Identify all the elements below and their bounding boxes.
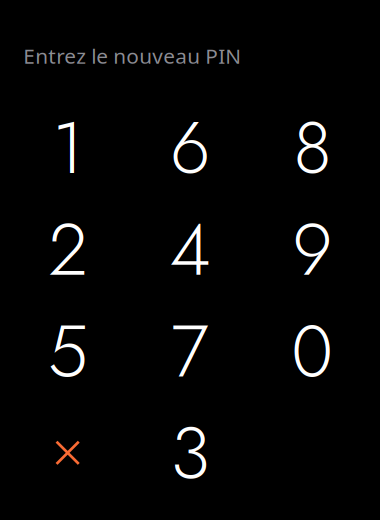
staticText: 2	[48, 198, 87, 302]
staticText: 0	[291, 299, 333, 403]
button[interactable]: 8	[251, 97, 373, 199]
staticText: 3	[170, 401, 209, 505]
staticText: 7	[171, 299, 209, 403]
button[interactable]: 2	[6, 199, 129, 301]
staticText: 9	[292, 198, 332, 302]
button[interactable]: 7	[129, 301, 251, 402]
button[interactable]: 4	[129, 199, 251, 301]
button[interactable]: 9	[251, 199, 373, 301]
button[interactable]: 6	[129, 97, 251, 199]
staticText: 4	[169, 198, 210, 302]
staticText: Entrez le nouveau PIN	[23, 41, 241, 70]
staticText: 6	[170, 96, 210, 200]
staticText: 8	[293, 96, 331, 200]
button[interactable]: 0	[251, 301, 373, 402]
button[interactable]: Effacer	[6, 402, 129, 504]
button[interactable]: 5	[6, 301, 129, 402]
staticText: 1	[52, 96, 83, 200]
staticText: 5	[48, 299, 88, 403]
button[interactable]: 1	[6, 97, 129, 199]
button[interactable]: 3	[129, 402, 251, 504]
